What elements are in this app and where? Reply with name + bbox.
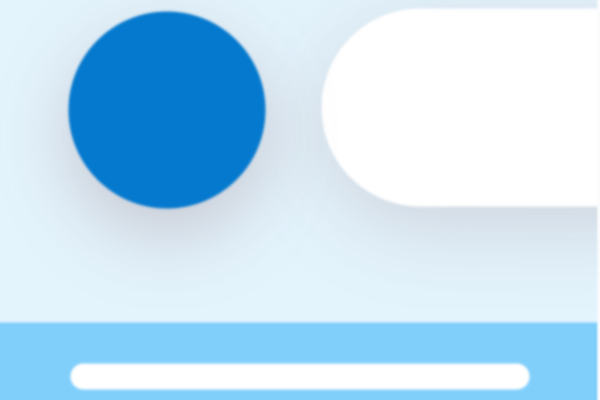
button[interactable]: Profile xyxy=(65,8,268,211)
button[interactable]: Search xyxy=(67,360,532,392)
